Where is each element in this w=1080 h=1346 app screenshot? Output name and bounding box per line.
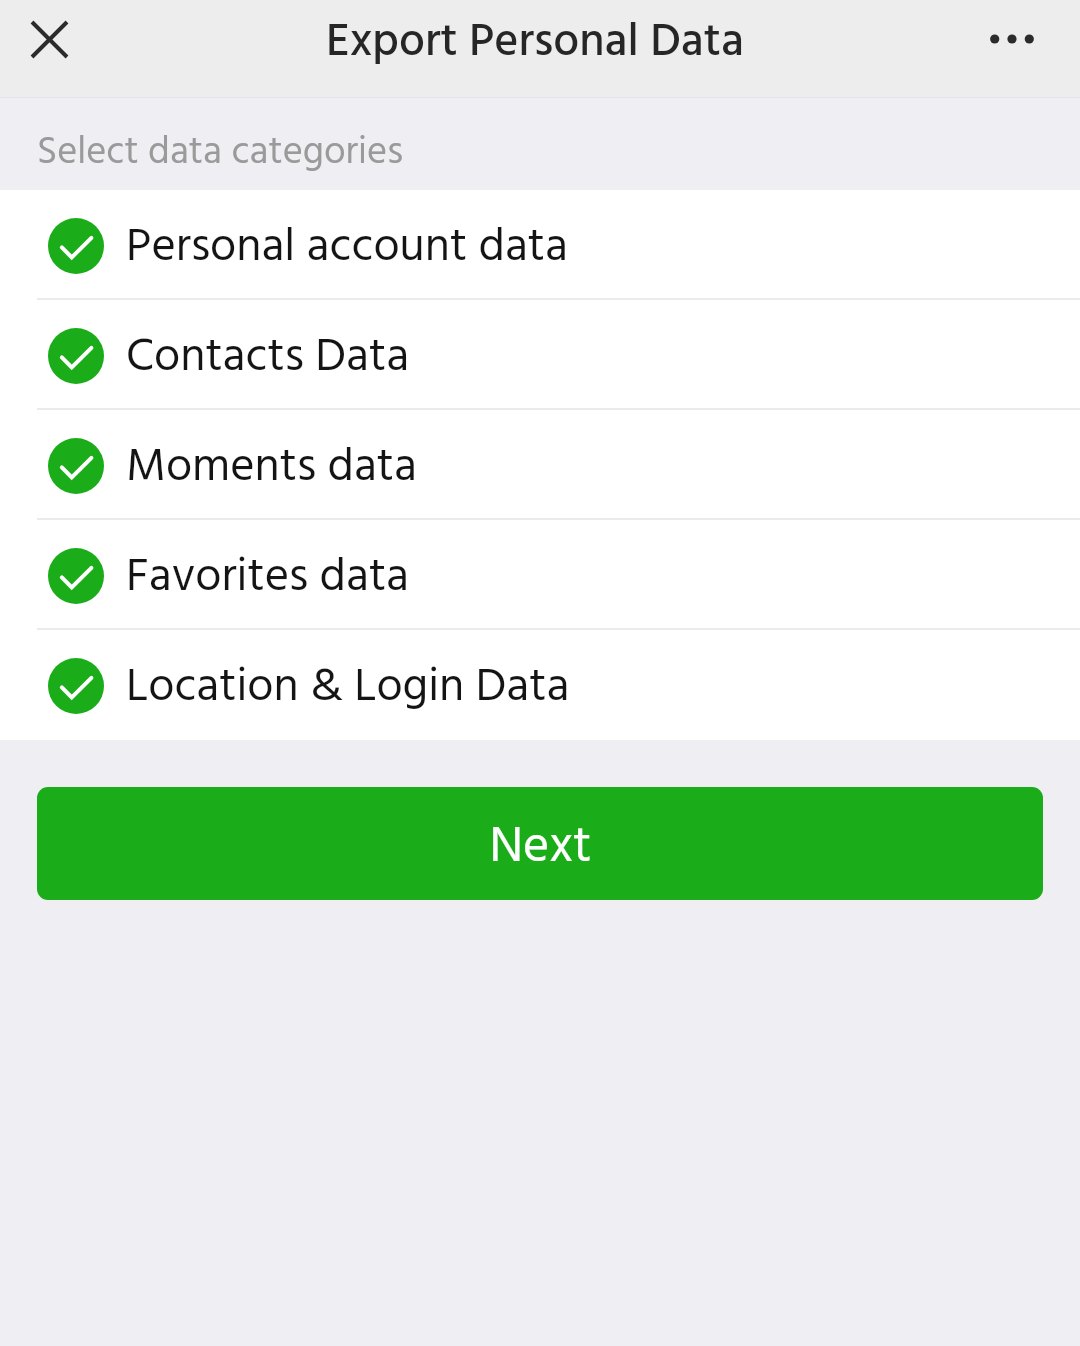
staticText: Export Personal Data — [326, 6, 744, 80]
staticText: Contacts Data — [126, 321, 410, 396]
button[interactable]: Close — [0, 0, 98, 78]
staticText: Favorites data — [126, 541, 410, 616]
staticText: Location & Login Data — [126, 651, 570, 726]
staticText: Select data categories — [37, 122, 404, 184]
button[interactable]: Personal account data — [0, 190, 1080, 300]
button[interactable]: Next — [37, 787, 1043, 900]
button[interactable]: More options — [982, 0, 1042, 78]
button[interactable]: Favorites data — [0, 520, 1080, 630]
staticText: Personal account data — [126, 211, 568, 286]
staticText: Moments data — [126, 431, 417, 506]
staticText: Next — [489, 808, 592, 888]
button[interactable]: Contacts Data — [0, 300, 1080, 410]
button[interactable]: Location & Login Data — [0, 630, 1080, 740]
button[interactable]: Moments data — [0, 410, 1080, 520]
